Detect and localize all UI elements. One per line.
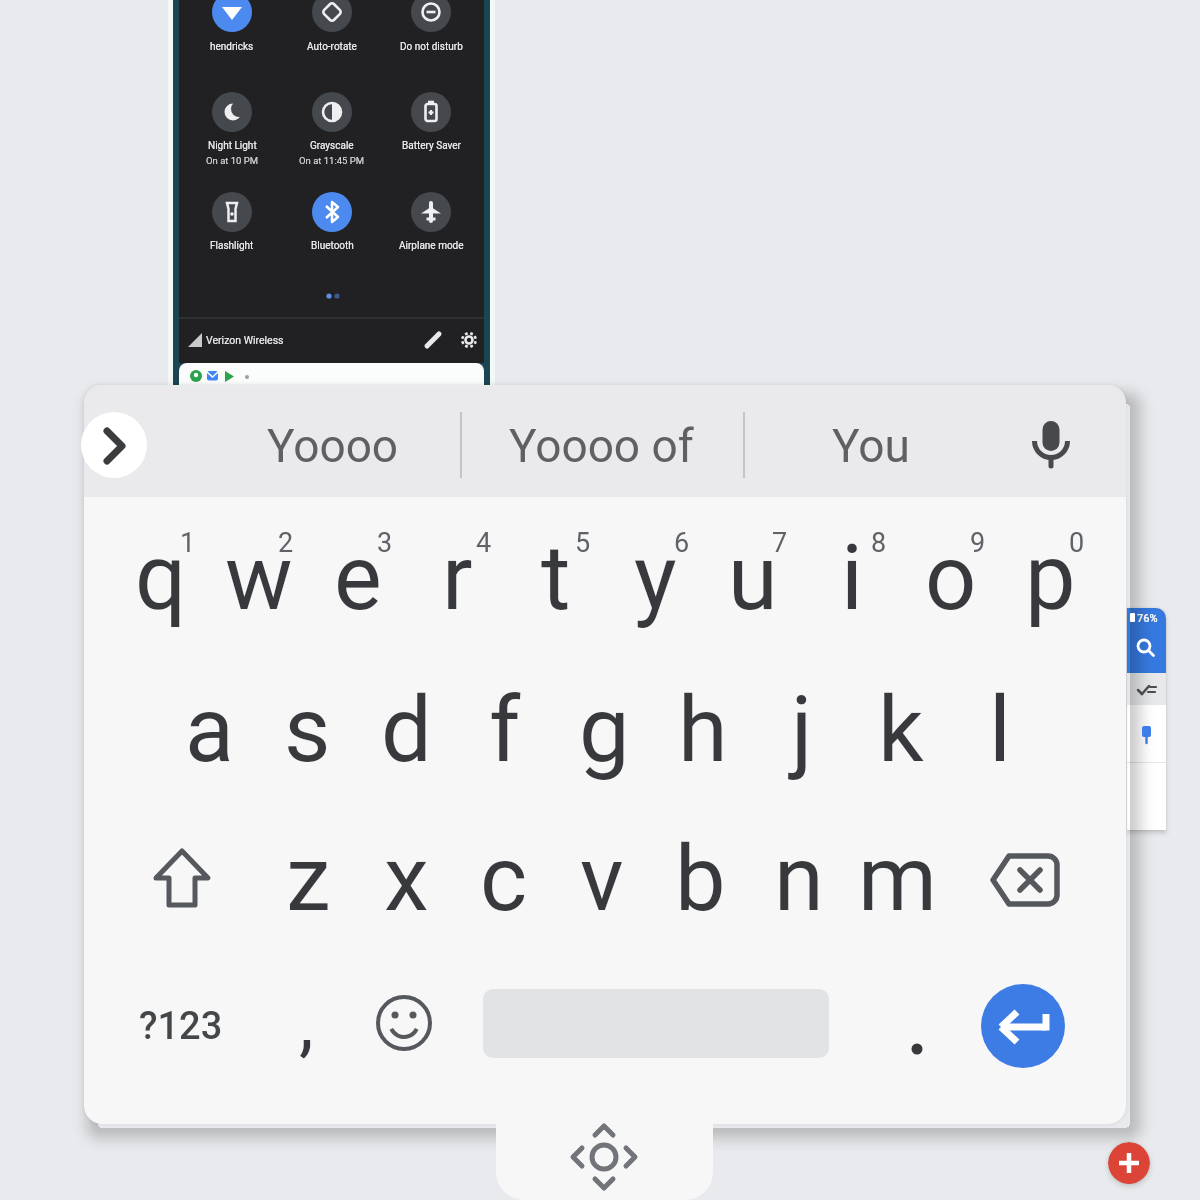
staticText: f — [489, 678, 521, 783]
staticText: Yoooo of — [509, 419, 694, 473]
staticText: , — [299, 979, 314, 1066]
button[interactable] — [1127, 673, 1166, 705]
staticText: u — [728, 526, 778, 631]
button[interactable] — [385, 182, 475, 242]
staticText: j — [791, 678, 813, 783]
button[interactable] — [496, 1118, 713, 1200]
button[interactable] — [369, 991, 439, 1061]
staticText: l — [989, 678, 1011, 783]
staticText: g — [579, 678, 630, 783]
button[interactable] — [1127, 705, 1166, 762]
button[interactable]: n — [751, 816, 847, 942]
staticText: c — [480, 827, 528, 932]
button[interactable]: j — [754, 667, 850, 793]
staticText: m — [858, 827, 937, 932]
button[interactable]: ?123 — [126, 981, 236, 1071]
staticText: n — [774, 827, 824, 932]
button[interactable] — [132, 829, 232, 929]
staticText: 2 — [278, 527, 294, 559]
button[interactable]: You — [771, 411, 971, 481]
staticText: o — [925, 526, 977, 631]
staticText: Bluetooth — [311, 240, 354, 252]
button[interactable] — [187, 0, 277, 42]
button[interactable] — [1127, 608, 1166, 673]
button[interactable]: h — [655, 667, 751, 793]
staticText: s — [284, 678, 331, 783]
button[interactable]: c — [456, 816, 552, 942]
staticText: Yoooo — [267, 419, 399, 473]
button[interactable] — [981, 984, 1065, 1068]
staticText: b — [675, 827, 726, 932]
button[interactable]: b — [652, 816, 748, 942]
staticText: 3 — [377, 527, 393, 559]
button[interactable] — [286, 182, 376, 242]
button[interactable]: g — [556, 667, 652, 793]
button[interactable]: , — [266, 972, 346, 1072]
button[interactable]: d — [358, 667, 454, 793]
staticText: Flashlight — [210, 240, 254, 252]
staticText: 76% — [1137, 612, 1158, 625]
button[interactable]: m — [849, 816, 945, 942]
staticText: Verizon Wireless — [206, 334, 284, 346]
staticText: w — [225, 526, 293, 631]
staticText: Grayscale — [310, 140, 354, 152]
button[interactable]: k — [853, 667, 949, 793]
button[interactable]: l — [952, 667, 1048, 793]
button[interactable]: u — [705, 515, 801, 641]
button[interactable]: y — [607, 515, 703, 641]
staticText: r — [442, 526, 473, 631]
button[interactable]: f — [457, 667, 553, 793]
staticText: x — [384, 827, 429, 932]
staticText: hendricks — [210, 41, 254, 53]
button[interactable] — [1108, 1142, 1150, 1184]
button[interactable] — [286, 0, 376, 42]
button[interactable]: z — [260, 816, 356, 942]
button[interactable]: v — [554, 816, 650, 942]
staticText: q — [135, 526, 187, 631]
staticText: a — [185, 678, 234, 783]
staticText: e — [334, 526, 382, 631]
staticText: i — [841, 526, 863, 631]
staticText: d — [381, 678, 432, 783]
button[interactable]: Yoooo of — [466, 411, 736, 481]
staticText: 1 — [180, 527, 196, 559]
staticText: 0 — [1069, 527, 1085, 559]
button[interactable]: i — [804, 515, 900, 641]
staticText: 5 — [575, 527, 591, 559]
button[interactable] — [1017, 410, 1087, 480]
staticText: z — [286, 827, 331, 932]
staticText: ?123 — [139, 1004, 223, 1049]
button[interactable]: x — [358, 816, 454, 942]
button[interactable] — [81, 412, 147, 478]
button[interactable]: a — [161, 667, 257, 793]
button[interactable]: s — [259, 667, 355, 793]
staticText: 8 — [871, 527, 887, 559]
staticText: 9 — [970, 527, 986, 559]
staticText: v — [580, 827, 624, 932]
staticText: t — [541, 526, 571, 631]
button[interactable] — [969, 829, 1069, 929]
button[interactable] — [286, 82, 376, 142]
button[interactable]: p — [1002, 515, 1098, 641]
staticText: Auto-rotate — [307, 41, 357, 53]
button[interactable]: r — [409, 515, 505, 641]
staticText: Do not disturb — [400, 41, 463, 53]
button[interactable]: q — [113, 515, 209, 641]
staticText: k — [878, 678, 924, 783]
button[interactable]: e — [310, 515, 406, 641]
button[interactable]: Yoooo — [208, 411, 458, 481]
staticText: Battery Saver — [402, 140, 461, 152]
button[interactable]: o — [903, 515, 999, 641]
button[interactable]: w — [211, 515, 307, 641]
staticText: On at 10 PM — [206, 155, 259, 166]
staticText: Night Light — [208, 140, 257, 152]
button[interactable] — [187, 82, 277, 142]
staticText: 7 — [772, 527, 788, 559]
button[interactable] — [887, 996, 947, 1056]
button[interactable] — [385, 82, 475, 142]
button[interactable]: t — [508, 515, 604, 641]
button[interactable] — [187, 182, 277, 242]
button[interactable] — [385, 0, 475, 42]
staticText: 4 — [476, 527, 492, 559]
